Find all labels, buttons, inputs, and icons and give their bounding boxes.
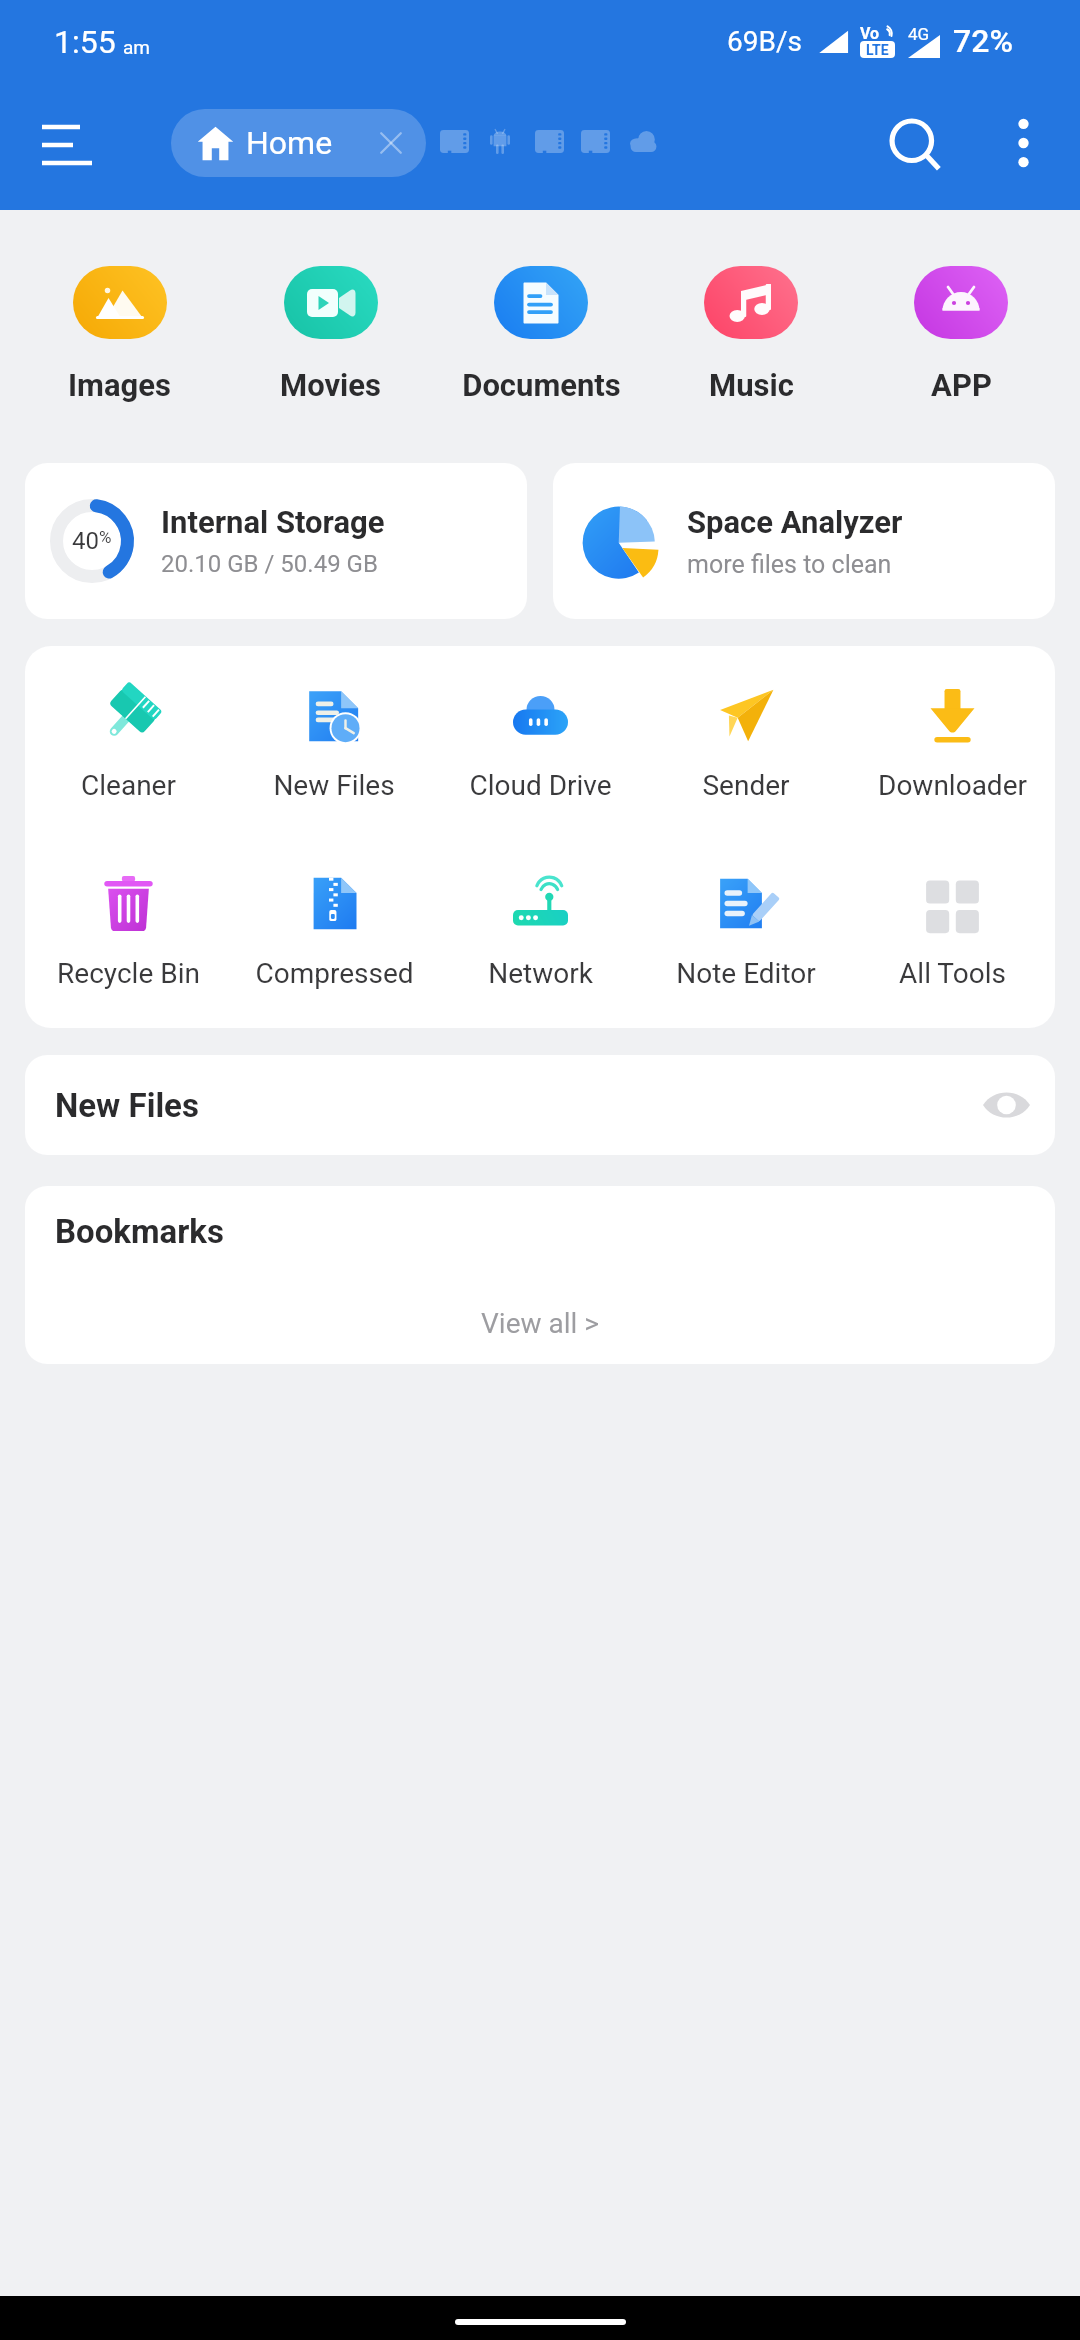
button[interactable]: USB tab	[574, 113, 617, 170]
staticText: Cloud Drive	[469, 769, 612, 802]
staticText: 40	[72, 527, 99, 555]
button[interactable]: Documents	[436, 266, 646, 403]
button[interactable]: Downloader	[849, 688, 1055, 802]
staticText: Music	[709, 367, 794, 403]
staticText: %	[99, 527, 112, 547]
button[interactable]: Movies	[225, 266, 436, 403]
button[interactable]: Menu	[17, 95, 117, 195]
staticText: APP	[931, 367, 992, 403]
button[interactable]: All Tools	[849, 876, 1055, 990]
staticText: New Files	[55, 1086, 199, 1125]
button[interactable]: Compressed	[231, 876, 437, 990]
staticText: Internal Storage	[161, 504, 385, 540]
button[interactable]: Apps tab	[478, 113, 521, 170]
button[interactable]: Cleaner	[25, 688, 231, 802]
button[interactable]: 40	[25, 463, 527, 619]
button[interactable]: Music	[646, 266, 856, 403]
button[interactable]: Network	[437, 876, 643, 990]
staticText: Vo	[860, 24, 880, 43]
button[interactable]: Images	[14, 266, 225, 403]
staticText: All Tools	[899, 957, 1006, 990]
button[interactable]: Search	[867, 97, 967, 197]
staticText: am	[123, 36, 150, 58]
button[interactable]: Home	[171, 109, 426, 177]
button[interactable]: New Files	[231, 688, 437, 802]
button[interactable]: Note Editor	[643, 876, 849, 990]
button[interactable]: Cloud tab	[622, 113, 665, 170]
button[interactable]: SD card tab	[528, 113, 571, 170]
staticText: LTE	[866, 42, 889, 58]
staticText: Cleaner	[81, 769, 176, 802]
staticText: Note Editor	[676, 957, 816, 990]
button[interactable]: New Files	[25, 1055, 1055, 1155]
staticText: Images	[68, 367, 171, 403]
button[interactable]: View all >	[457, 1299, 623, 1348]
button[interactable]: APP	[856, 266, 1066, 403]
staticText: Downloader	[878, 769, 1027, 802]
staticText: Space Analyzer	[687, 504, 903, 540]
staticText: Home	[246, 124, 333, 162]
staticText: Compressed	[255, 957, 414, 990]
button[interactable]: Cloud Drive	[437, 688, 643, 802]
staticText: Movies	[280, 367, 381, 403]
staticText: 4G	[908, 24, 930, 44]
staticText: Bookmarks	[55, 1212, 224, 1251]
staticText: more files to clean	[687, 550, 892, 579]
button[interactable]: More options	[978, 97, 1069, 188]
staticText: 1:55	[54, 23, 116, 61]
staticText: 69B/s	[727, 25, 802, 58]
staticText: Network	[488, 957, 593, 990]
staticText: View all >	[481, 1307, 599, 1340]
button[interactable]: Toggle visibility	[967, 1066, 1045, 1144]
button[interactable]: Recycle Bin	[25, 876, 231, 990]
button[interactable]: Sender	[643, 688, 849, 802]
staticText: 20.10 GB / 50.49 GB	[161, 550, 378, 578]
staticText: Sender	[702, 769, 790, 802]
staticText: 72%	[953, 22, 1013, 60]
staticText: New Files	[273, 769, 395, 802]
staticText: Recycle Bin	[57, 957, 200, 990]
button[interactable]: Space Analyzer	[553, 463, 1055, 619]
staticText: Documents	[462, 367, 621, 403]
button[interactable]: Storage tab	[433, 113, 476, 170]
